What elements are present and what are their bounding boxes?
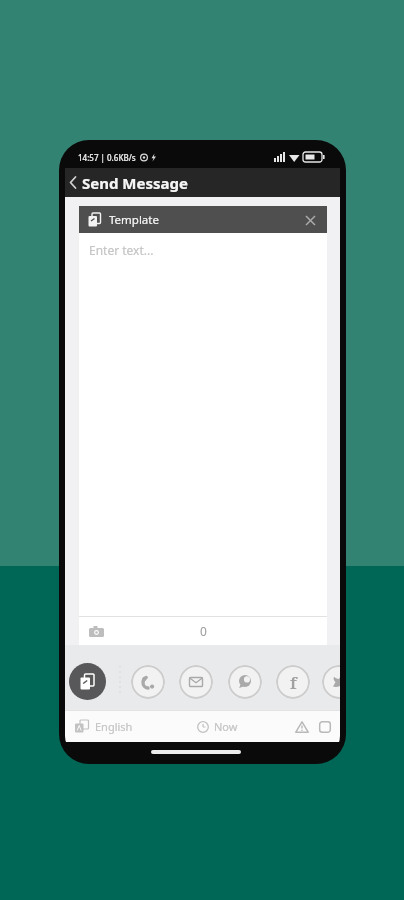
button[interactable] bbox=[301, 211, 319, 229]
button[interactable] bbox=[69, 663, 106, 700]
staticText: Enter text... bbox=[89, 242, 154, 258]
staticText: f bbox=[290, 671, 297, 694]
staticText: English bbox=[95, 719, 133, 734]
button[interactable] bbox=[317, 719, 332, 734]
staticText: 0 bbox=[200, 623, 207, 639]
button[interactable]: f bbox=[276, 665, 310, 699]
button[interactable] bbox=[179, 665, 213, 699]
button[interactable] bbox=[86, 621, 106, 641]
button[interactable]: Now bbox=[197, 719, 238, 734]
button[interactable] bbox=[294, 719, 310, 735]
button[interactable] bbox=[322, 665, 340, 699]
button[interactable] bbox=[131, 665, 165, 699]
staticText: Template bbox=[109, 212, 159, 228]
button[interactable] bbox=[65, 168, 81, 197]
staticText: 14:57 | 0.6KB/s bbox=[78, 152, 136, 163]
staticText: Now bbox=[214, 719, 238, 734]
button[interactable] bbox=[228, 665, 262, 699]
button[interactable]: English bbox=[75, 719, 133, 734]
staticText: Send Message bbox=[82, 173, 188, 193]
